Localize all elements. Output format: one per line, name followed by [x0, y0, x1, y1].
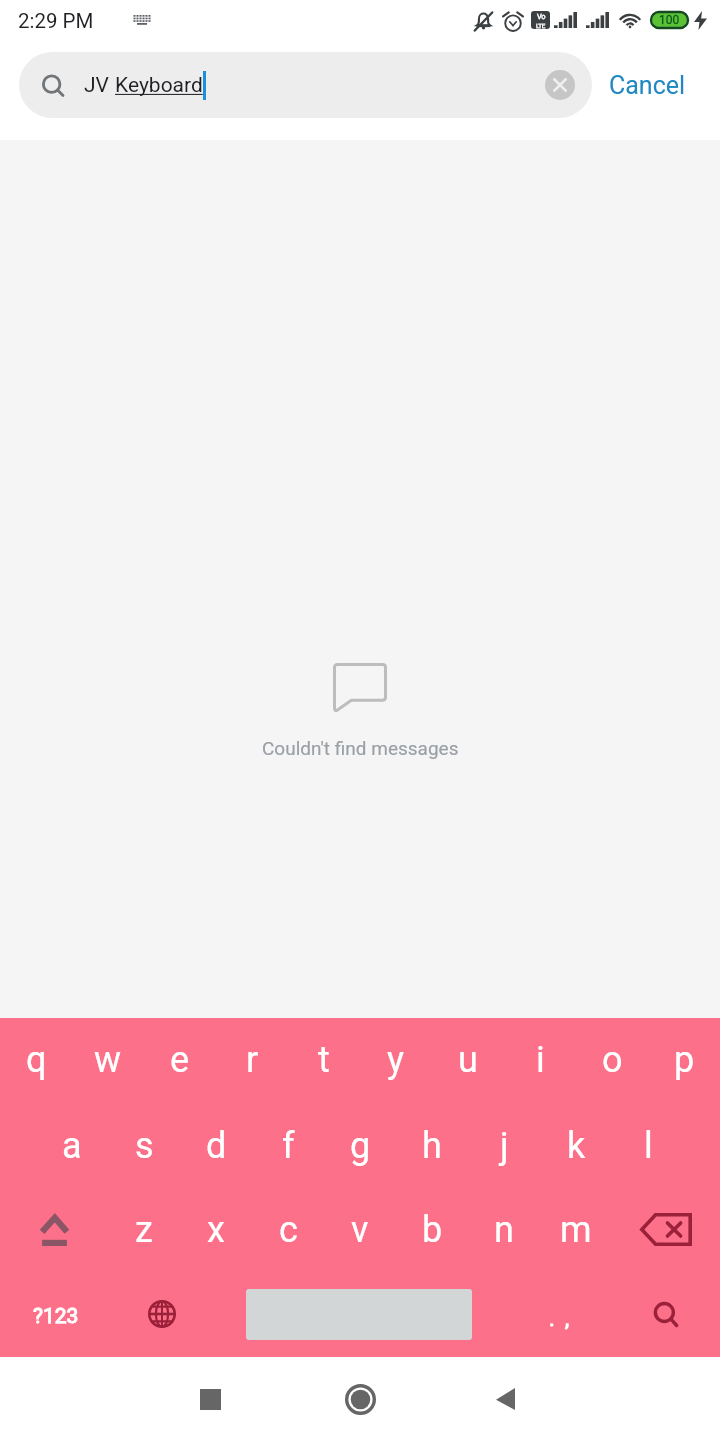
staticText: x: [207, 1209, 225, 1251]
button[interactable]: v: [324, 1188, 396, 1271]
button[interactable]: Cancel: [603, 61, 692, 110]
button[interactable]: q: [0, 1018, 72, 1101]
button[interactable]: Home: [320, 1359, 400, 1439]
button[interactable]: o: [576, 1018, 648, 1101]
button[interactable]: c: [252, 1188, 324, 1271]
staticText: JV: [84, 73, 115, 98]
staticText: z: [135, 1209, 153, 1251]
staticText: n: [494, 1209, 514, 1251]
button[interactable]: b: [396, 1188, 468, 1271]
button[interactable]: Shift: [0, 1188, 108, 1271]
staticText: l: [644, 1125, 653, 1167]
staticText: s: [135, 1125, 154, 1167]
staticText: 2:29 PM: [18, 9, 94, 33]
staticText: g: [350, 1125, 371, 1167]
staticText: h: [422, 1125, 442, 1167]
button[interactable]: w: [72, 1018, 144, 1101]
staticText: y: [387, 1039, 405, 1081]
button[interactable]: y: [360, 1018, 432, 1101]
button[interactable]: Change language: [108, 1268, 216, 1357]
staticText: LTE: [536, 22, 546, 29]
button[interactable]: a: [36, 1104, 108, 1187]
button[interactable]: m: [540, 1188, 612, 1271]
button[interactable]: e: [144, 1018, 216, 1101]
staticText: Vo: [537, 12, 546, 21]
staticText: j: [500, 1125, 509, 1167]
staticText: ?123: [33, 1304, 79, 1329]
staticText: b: [422, 1209, 443, 1251]
staticText: f: [282, 1125, 295, 1167]
staticText: c: [279, 1209, 298, 1251]
button[interactable]: Search: [612, 1268, 720, 1357]
button[interactable]: Clear search: [538, 63, 582, 107]
staticText: p: [674, 1039, 695, 1081]
button[interactable]: r: [216, 1018, 288, 1101]
staticText: k: [567, 1125, 586, 1167]
staticText: r: [246, 1039, 259, 1081]
staticText: . ,: [549, 1307, 570, 1332]
button[interactable]: x: [180, 1188, 252, 1271]
button[interactable]: JV: [19, 52, 592, 118]
staticText: a: [62, 1125, 82, 1167]
button[interactable]: t: [288, 1018, 360, 1101]
staticText: o: [602, 1039, 623, 1081]
button[interactable]: d: [180, 1104, 252, 1187]
button[interactable]: p: [648, 1018, 720, 1101]
staticText: t: [318, 1039, 330, 1081]
button[interactable]: . ,: [504, 1268, 612, 1357]
button[interactable]: n: [468, 1188, 540, 1271]
staticText: Cancel: [609, 71, 686, 100]
button[interactable]: ?123: [0, 1268, 108, 1357]
button[interactable]: g: [324, 1104, 396, 1187]
button[interactable]: k: [540, 1104, 612, 1187]
staticText: 100: [659, 13, 680, 27]
staticText: Couldn't find messages: [262, 737, 459, 759]
button[interactable]: i: [504, 1018, 576, 1101]
button[interactable]: Back: [465, 1359, 545, 1439]
staticText: d: [206, 1125, 227, 1167]
staticText: m: [560, 1209, 592, 1251]
staticText: u: [458, 1039, 478, 1081]
button[interactable]: j: [468, 1104, 540, 1187]
button[interactable]: Backspace: [612, 1188, 720, 1271]
staticText: Keyboard: [115, 73, 203, 98]
staticText: q: [26, 1039, 47, 1081]
staticText: i: [536, 1039, 545, 1081]
button[interactable]: u: [432, 1018, 504, 1101]
button[interactable]: z: [108, 1188, 180, 1271]
button[interactable]: Recent apps: [170, 1359, 250, 1439]
button[interactable]: h: [396, 1104, 468, 1187]
staticText: v: [351, 1209, 369, 1251]
button[interactable]: f: [252, 1104, 324, 1187]
staticText: e: [170, 1039, 190, 1081]
button[interactable]: l: [612, 1104, 684, 1187]
staticText: w: [94, 1039, 122, 1081]
button[interactable]: s: [108, 1104, 180, 1187]
